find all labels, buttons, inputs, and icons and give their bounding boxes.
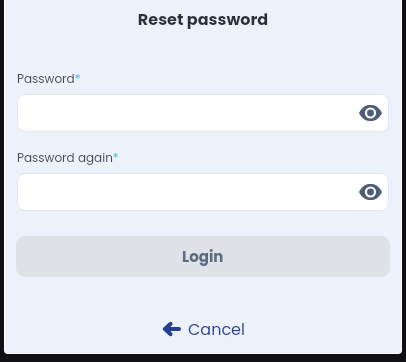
staticText: Reset password [5,8,401,30]
staticText: Login [182,246,224,267]
button[interactable]: Cancel [154,314,253,344]
staticText: Cancel [188,318,245,340]
staticText: Password* [17,70,81,87]
button[interactable]: Show password [357,100,383,126]
button[interactable]: Login [16,236,390,277]
button[interactable]: Show password [18,174,388,210]
button[interactable]: Show password [357,179,383,205]
button[interactable]: Show password [18,95,388,131]
staticText: Password again* [17,149,119,166]
